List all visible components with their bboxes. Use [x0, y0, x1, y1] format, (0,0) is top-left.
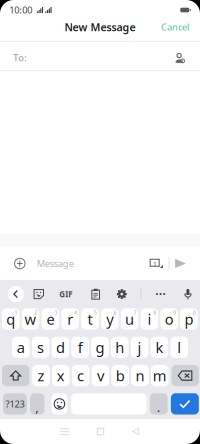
button[interactable]: Symbols — [3, 393, 27, 414]
staticText: i — [147, 309, 151, 329]
staticText: 3 — [54, 309, 57, 316]
button[interactable]: c — [72, 365, 89, 386]
button[interactable]: t — [81, 308, 99, 330]
staticText: , — [35, 398, 39, 416]
staticText: f — [78, 338, 83, 357]
staticText: s — [37, 338, 44, 357]
button[interactable]: Back — [132, 427, 140, 435]
staticText: p — [184, 309, 193, 329]
button[interactable]: Shift — [2, 365, 29, 386]
button[interactable]: f — [71, 337, 89, 358]
button[interactable]: u — [121, 308, 138, 330]
button[interactable]: Add attachment — [14, 258, 26, 269]
button[interactable]: Stickers — [33, 289, 44, 299]
staticText: j — [138, 338, 142, 357]
staticText: n — [135, 366, 144, 385]
staticText: 6 — [114, 309, 117, 316]
button[interactable]: o — [160, 308, 178, 330]
button[interactable]: g — [91, 337, 109, 358]
button[interactable]: Back — [8, 286, 24, 302]
staticText: New Message — [64, 20, 135, 34]
button[interactable]: GIF — [59, 289, 72, 299]
button[interactable]: w — [22, 308, 39, 330]
button[interactable]: b — [111, 365, 129, 386]
button[interactable]: x — [52, 365, 70, 386]
staticText: 9 — [173, 309, 176, 316]
staticText: m — [153, 366, 167, 385]
button[interactable]: Add contact — [175, 53, 185, 63]
staticText: 1 — [15, 309, 18, 316]
button[interactable]: l — [170, 337, 188, 358]
button[interactable]: Backspace — [171, 365, 199, 386]
staticText: w — [25, 309, 37, 329]
staticText: c — [77, 366, 84, 385]
staticText: d — [56, 338, 65, 357]
staticText: a — [17, 338, 25, 357]
button[interactable]: v — [92, 365, 109, 386]
button[interactable]: j — [131, 337, 148, 358]
button[interactable]: e — [42, 308, 59, 330]
button[interactable]: Clipboard — [91, 288, 100, 300]
button[interactable]: Cancel — [159, 18, 191, 36]
staticText: l — [177, 338, 181, 357]
staticText: z — [37, 366, 44, 385]
staticText: 2 — [34, 309, 37, 316]
button[interactable]: i — [141, 308, 158, 330]
button[interactable]: Home — [96, 427, 104, 435]
button[interactable]: k — [151, 337, 168, 358]
staticText: y — [106, 309, 113, 329]
button[interactable]: Settings — [117, 289, 127, 299]
staticText: Cancel — [161, 21, 189, 33]
button[interactable]: Period — [150, 393, 168, 414]
staticText: 4 — [74, 309, 77, 316]
button[interactable]: s — [32, 337, 49, 358]
staticText: GIF — [59, 289, 72, 299]
staticText: 7 — [133, 309, 136, 316]
staticText: h — [115, 338, 124, 357]
button[interactable]: p — [180, 308, 198, 330]
button[interactable]: Recents — [60, 428, 69, 435]
button[interactable]: h — [111, 337, 129, 358]
staticText: 1 — [153, 260, 157, 269]
staticText: b — [116, 366, 125, 385]
button[interactable]: r — [61, 308, 79, 330]
staticText: ?123 — [5, 398, 24, 410]
staticText: k — [155, 338, 163, 357]
button[interactable]: Send — [175, 259, 186, 268]
staticText: 0 — [193, 309, 196, 316]
staticText: 5 — [94, 309, 97, 316]
staticText: v — [97, 366, 104, 385]
button[interactable]: Comma — [30, 393, 44, 414]
button[interactable]: a — [12, 337, 30, 358]
button[interactable]: z — [32, 365, 50, 386]
staticText: . — [157, 398, 161, 416]
button[interactable]: q — [2, 308, 20, 330]
staticText: 10:00 — [9, 4, 32, 16]
button[interactable]: m — [151, 365, 169, 386]
staticText: u — [125, 309, 134, 329]
staticText: q — [6, 309, 15, 329]
staticText: e — [46, 309, 54, 329]
staticText: To: — [13, 51, 27, 64]
button[interactable]: n — [131, 365, 149, 386]
staticText: Message — [37, 257, 74, 270]
staticText: 8 — [153, 309, 156, 316]
staticText: t — [87, 309, 92, 329]
button[interactable]: y — [101, 308, 119, 330]
button[interactable]: d — [52, 337, 69, 358]
staticText: g — [95, 338, 104, 357]
button[interactable]: Voice input — [184, 288, 192, 300]
button[interactable]: Message count — [150, 259, 163, 268]
staticText: r — [67, 309, 73, 329]
button[interactable]: Enter — [171, 393, 199, 414]
button[interactable]: Emoji — [51, 393, 67, 414]
button[interactable]: More — [156, 292, 165, 296]
staticText: o — [165, 309, 174, 329]
staticText: x — [57, 366, 65, 385]
